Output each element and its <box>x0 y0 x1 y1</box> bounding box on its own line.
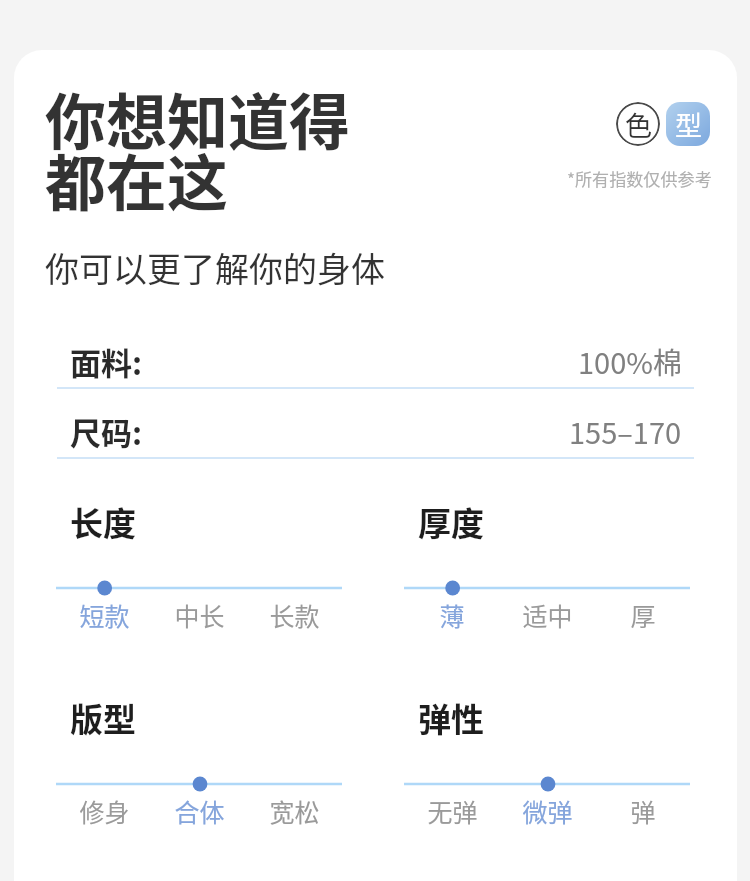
staticText: 型 <box>675 105 702 144</box>
staticText: 无弹 <box>427 793 478 829</box>
button[interactable]: 短款 <box>56 597 152 637</box>
button[interactable]: 长款 <box>247 597 342 637</box>
button[interactable]: 合体 <box>152 793 247 833</box>
button[interactable]: 尺码: <box>57 402 694 472</box>
staticText: 155–170 <box>569 410 682 452</box>
button[interactable]: 宽松 <box>247 793 342 833</box>
staticText: 色 <box>625 105 652 144</box>
button[interactable]: 面料: <box>57 332 694 402</box>
staticText: 合体 <box>174 793 225 829</box>
staticText: 厚 <box>630 597 656 633</box>
button[interactable]: 版型 Fit tab <box>666 102 710 146</box>
other: 长度 指示条 <box>56 576 356 600</box>
staticText: 微弹 <box>522 793 573 829</box>
button[interactable]: 修身 <box>56 793 152 833</box>
button[interactable]: 弹 <box>595 793 690 833</box>
button[interactable]: 薄 <box>404 597 500 637</box>
staticText: 短款 <box>79 597 130 633</box>
staticText: 宽松 <box>269 793 320 829</box>
staticText: 长款 <box>269 597 320 633</box>
staticText: 长度 <box>70 498 136 546</box>
staticText: 弹性 <box>418 694 484 742</box>
button[interactable]: 厚 <box>595 597 690 637</box>
button[interactable]: 微弹 <box>500 793 595 833</box>
staticText: 弹 <box>630 793 656 829</box>
staticText: 你可以更了解你的身体 <box>45 243 385 292</box>
staticText: 修身 <box>79 793 130 829</box>
button[interactable]: 无弹 <box>404 793 500 833</box>
staticText: 厚度 <box>418 498 484 546</box>
staticText: 版型 <box>70 694 136 742</box>
button[interactable]: 适中 <box>500 597 595 637</box>
staticText: 薄 <box>439 597 465 633</box>
staticText: *所有指数仅供参考 <box>567 166 712 191</box>
other: 厚度 指示条 <box>404 576 704 600</box>
staticText: 中长 <box>174 597 225 633</box>
staticText: 面料: <box>70 339 143 384</box>
staticText: 100%棉 <box>578 340 682 382</box>
staticText: 你想知道得 都在这 <box>45 74 351 223</box>
staticText: 尺码: <box>70 409 143 454</box>
button[interactable]: 颜色 Colour tab <box>616 102 660 146</box>
staticText: 适中 <box>522 597 573 633</box>
button[interactable]: 中长 <box>152 597 247 637</box>
other: 弹性 指示条 <box>404 772 704 796</box>
other: 版型 指示条 <box>56 772 356 796</box>
